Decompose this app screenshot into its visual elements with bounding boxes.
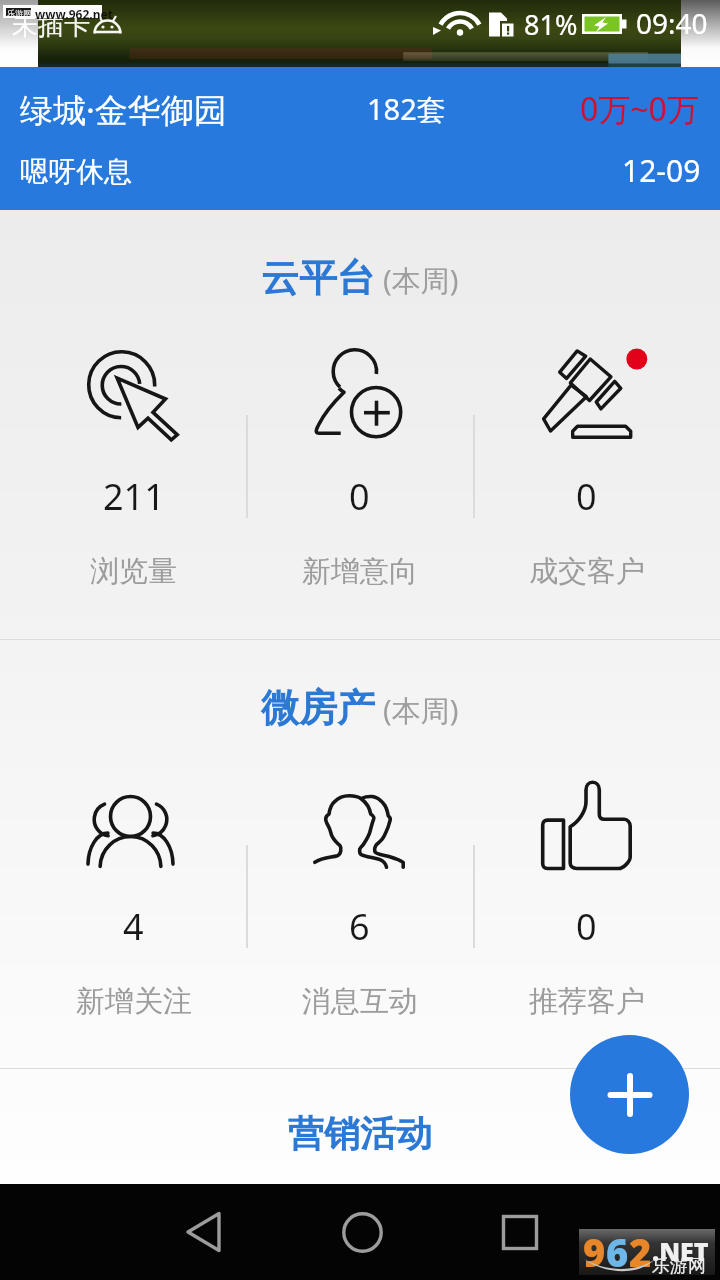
staticText: 新增关注: [76, 983, 192, 1020]
staticText: 211: [103, 472, 165, 521]
staticText: 9: [583, 1226, 606, 1272]
staticText: 推荐客户: [529, 983, 645, 1020]
staticText: 乐游网: [7, 8, 31, 16]
button[interactable]: Back: [143, 1184, 263, 1280]
staticText: 未插卡: [12, 9, 90, 42]
button[interactable]: 0: [246, 320, 473, 600]
staticText: 6: [606, 1226, 629, 1272]
staticText: 云平台: [261, 254, 375, 302]
staticText: 0: [576, 472, 597, 521]
staticText: 12-09: [622, 150, 701, 191]
staticText: 乐游网: [652, 1255, 706, 1278]
staticText: 营销活动: [288, 1111, 432, 1156]
button[interactable]: Home: [302, 1184, 422, 1280]
button[interactable]: 0: [473, 320, 700, 600]
button[interactable]: Add: [570, 1035, 689, 1154]
staticText: 浏览量: [90, 553, 177, 590]
staticText: 消息互动: [302, 983, 418, 1020]
staticText: .NET: [652, 1234, 709, 1268]
staticText: 0: [349, 472, 370, 521]
staticText: www.962.net: [35, 6, 113, 19]
staticText: 成交客户: [529, 553, 645, 590]
staticText: 0: [576, 902, 597, 951]
button[interactable]: Recents: [460, 1184, 580, 1280]
staticText: 嗯呀休息: [20, 154, 132, 189]
staticText: 81%: [524, 6, 578, 43]
button[interactable]: 4: [20, 750, 247, 1030]
staticText: (本周): [383, 690, 459, 730]
staticText: 0万~0万: [580, 87, 699, 131]
button[interactable]: 营销活动: [0, 1069, 720, 1183]
staticText: 4: [123, 902, 144, 951]
button[interactable]: 6: [246, 750, 473, 1030]
staticText: 微房产: [261, 684, 375, 732]
staticText: 182套: [367, 89, 446, 129]
staticText: 新增意向: [302, 553, 418, 590]
staticText: 绿城·金华御园: [20, 87, 227, 132]
staticText: (本周): [383, 260, 459, 300]
button[interactable]: 211: [20, 320, 247, 600]
button[interactable]: 0: [473, 750, 700, 1030]
staticText: 09:40: [636, 4, 708, 42]
staticText: 6: [349, 902, 370, 951]
staticText: 2: [629, 1226, 652, 1272]
